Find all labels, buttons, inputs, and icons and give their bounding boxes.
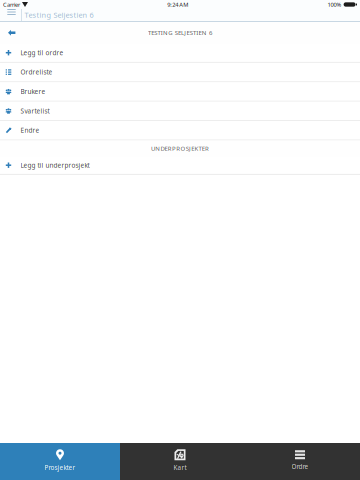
- staticText: Ordreliste: [20, 68, 52, 76]
- button[interactable]: Svartelist: [0, 102, 360, 121]
- button[interactable]: Prosjekter: [0, 443, 120, 480]
- staticText: 100%: [328, 1, 342, 8]
- staticText: TESTING SELJESTIEN 6: [148, 29, 212, 37]
- staticText: 9:24 AM: [167, 1, 188, 8]
- staticText: Testing Seljestien 6: [24, 10, 93, 20]
- staticText: Prosjekter: [44, 463, 75, 472]
- button[interactable]: Legg til underprosjekt: [0, 156, 360, 175]
- button[interactable]: Legg til ordre: [0, 43, 360, 63]
- staticText: Svartelist: [20, 106, 49, 115]
- button[interactable]: Endre: [0, 121, 360, 140]
- button[interactable]: Menu: [0, 9, 21, 21]
- staticText: Endre: [20, 126, 39, 135]
- button[interactable]: Ordreliste: [0, 63, 360, 82]
- button[interactable]: Kart: [120, 443, 240, 480]
- staticText: Brukere: [20, 87, 45, 96]
- staticText: Kart: [173, 463, 186, 472]
- button[interactable]: Brukere: [0, 82, 360, 102]
- staticText: Carrier: [3, 1, 20, 8]
- staticText: Legg til underprosjekt: [20, 161, 89, 169]
- staticText: Ordre: [291, 462, 308, 471]
- button[interactable]: Ordre: [240, 443, 360, 480]
- staticText: UNDERPROSJEKTER: [151, 144, 209, 153]
- button[interactable]: Back: [8, 30, 15, 36]
- staticText: Legg til ordre: [20, 48, 63, 57]
